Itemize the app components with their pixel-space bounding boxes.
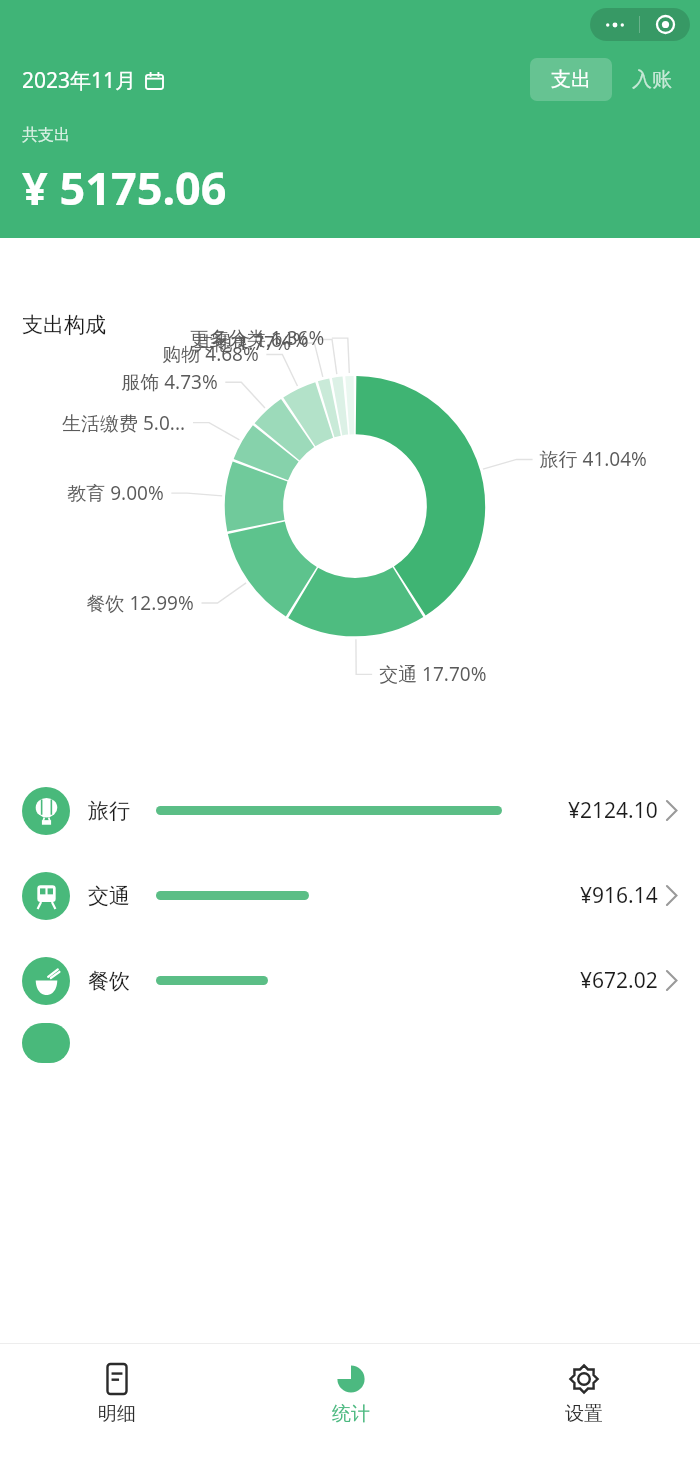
staticText: 餐饮 [88, 968, 130, 994]
staticText: ¥2124.10 [568, 796, 658, 825]
button[interactable]: 2023年11月 [22, 66, 163, 95]
staticText: 明细 [98, 1402, 136, 1426]
staticText: ¥672.02 [580, 966, 658, 995]
button[interactable]: More [590, 8, 639, 41]
staticText: 统计 [332, 1402, 370, 1426]
button[interactable]: 设置 [467, 1344, 700, 1469]
staticText: 共支出 [22, 125, 70, 145]
staticText: 入账 [632, 67, 672, 92]
staticText: 2023年11月 [22, 66, 137, 95]
staticText: 支出 [551, 67, 591, 92]
button[interactable]: 支出 [530, 58, 612, 101]
button[interactable]: Target [640, 8, 690, 41]
staticText: ¥ 5175.06 [22, 157, 227, 218]
button[interactable]: 餐饮 [0, 938, 700, 1023]
staticText: 旅行 [88, 798, 130, 824]
button[interactable]: 旅行 [0, 768, 700, 853]
staticText: 支出构成 [22, 312, 106, 338]
button[interactable]: 入账 [612, 58, 680, 101]
staticText: 设置 [565, 1402, 603, 1426]
button[interactable]: 交通 [0, 853, 700, 938]
staticText: ¥916.14 [580, 881, 658, 910]
staticText: 交通 [88, 883, 130, 909]
button[interactable]: 统计 [234, 1344, 467, 1469]
button[interactable]: 明细 [0, 1344, 234, 1469]
